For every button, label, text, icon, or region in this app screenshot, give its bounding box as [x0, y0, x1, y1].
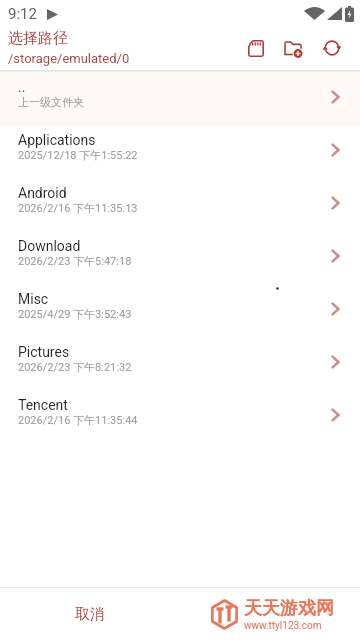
staticText: Pictures	[18, 344, 70, 360]
button[interactable]: Download	[0, 232, 360, 285]
staticText: ..	[18, 79, 26, 95]
button[interactable]	[323, 40, 341, 56]
staticText: Applications	[18, 132, 96, 148]
staticText: Android	[18, 185, 67, 201]
button[interactable]: Android	[0, 179, 360, 232]
staticText: 天天游戏网	[244, 597, 334, 620]
staticText: Misc	[18, 291, 49, 307]
staticText: 2026/2/16 下午11:35:13	[18, 201, 138, 215]
button[interactable]: Misc	[0, 285, 360, 338]
staticText: Tencent	[18, 397, 68, 413]
button[interactable]: ..	[0, 73, 360, 126]
staticText: 9:12	[8, 5, 37, 23]
staticText: 取消	[75, 605, 105, 624]
button[interactable]	[284, 41, 304, 59]
staticText: /storage/emulated/0	[8, 51, 130, 66]
staticText: 上一级文件夹	[18, 95, 84, 109]
staticText: 2025/12/18 下午1:55:22	[18, 148, 138, 162]
staticText: 2026/2/16 下午11:35:44	[18, 413, 138, 427]
staticText: www.ttyl123.com	[244, 620, 322, 632]
staticText: 2026/2/23 下午5:47:18	[18, 254, 132, 268]
button[interactable]: Applications	[0, 126, 360, 179]
staticText: 选择路径	[8, 29, 68, 48]
button[interactable]	[248, 40, 264, 57]
button[interactable]: Tencent	[0, 391, 360, 444]
button[interactable]: Pictures	[0, 338, 360, 391]
button[interactable]: 取消	[60, 588, 120, 640]
staticText: 2026/2/23 下午8:21:32	[18, 360, 132, 374]
staticText: 2025/4/29 下午3:52:43	[18, 307, 132, 321]
staticText: Download	[18, 238, 81, 254]
